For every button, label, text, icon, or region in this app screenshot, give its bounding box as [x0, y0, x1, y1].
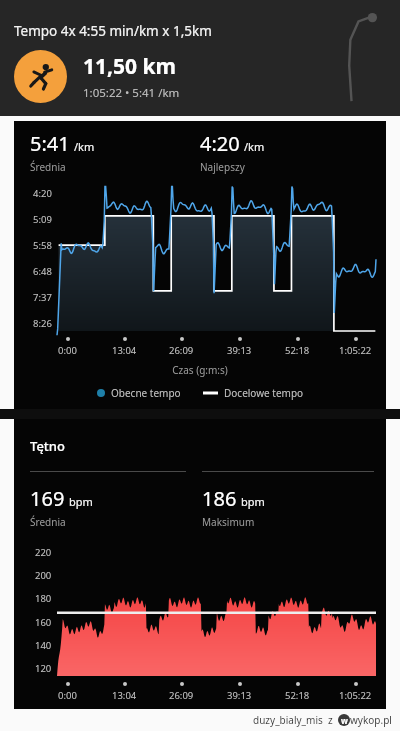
staticText: w: [341, 715, 348, 726]
staticText: 26:09: [169, 689, 194, 702]
staticText: 120: [35, 662, 52, 675]
staticText: 186: [202, 485, 237, 512]
staticText: 7:37: [33, 291, 52, 304]
staticText: Średnia: [30, 160, 66, 174]
staticText: Docelowe tempo: [224, 386, 304, 400]
staticText: 1:05:22 • 5:41 /km: [83, 85, 180, 101]
button[interactable]: Tempo 4x 4:55 min/km x 1,5km: [0, 0, 400, 116]
staticText: Tętno: [30, 437, 65, 455]
staticText: Maksimum: [202, 515, 255, 529]
staticText: 5:58: [33, 239, 52, 252]
staticText: 220: [35, 546, 52, 559]
staticText: 4:20: [200, 130, 240, 157]
staticText: /km: [74, 139, 95, 154]
other: Route map: [326, 8, 384, 104]
staticText: Średnia: [30, 515, 66, 529]
staticText: Czas (g:m:s): [14, 363, 386, 377]
staticText: Najlepszy: [200, 160, 245, 174]
staticText: Obecne tempo: [111, 386, 181, 400]
staticText: 180: [35, 592, 52, 605]
button[interactable]: Tętno: [14, 419, 386, 709]
staticText: 39:13: [227, 689, 252, 702]
staticText: 200: [35, 569, 52, 582]
staticText: 11,50 km: [83, 52, 176, 81]
staticText: 4:20: [33, 187, 52, 200]
staticText: 5:09: [33, 213, 52, 226]
button[interactable]: 5:41: [14, 121, 386, 409]
staticText: 0:00: [58, 689, 77, 702]
staticText: 8:26: [33, 317, 52, 330]
staticText: duzy_bialy_mis z: [253, 713, 338, 727]
staticText: 1:05:22: [339, 689, 372, 702]
staticText: 39:13: [227, 344, 252, 357]
staticText: Tempo 4x 4:55 min/km x 1,5km: [14, 22, 212, 40]
staticText: 52:18: [285, 344, 310, 357]
staticText: 160: [35, 616, 52, 629]
staticText: 0:00: [58, 344, 77, 357]
staticText: 13:04: [112, 689, 137, 702]
staticText: 140: [35, 639, 52, 652]
staticText: bpm: [69, 494, 93, 509]
staticText: /km: [244, 139, 265, 154]
button[interactable]: Running activity: [14, 50, 67, 103]
staticText: 1:05:22: [339, 344, 372, 357]
staticText: 169: [30, 485, 65, 512]
staticText: 26:09: [169, 344, 194, 357]
staticText: 13:04: [112, 344, 137, 357]
staticText: 6:48: [33, 265, 52, 278]
staticText: wykop.pl: [350, 713, 392, 727]
staticText: bpm: [241, 494, 265, 509]
staticText: 52:18: [285, 689, 310, 702]
staticText: 5:41: [30, 130, 70, 157]
